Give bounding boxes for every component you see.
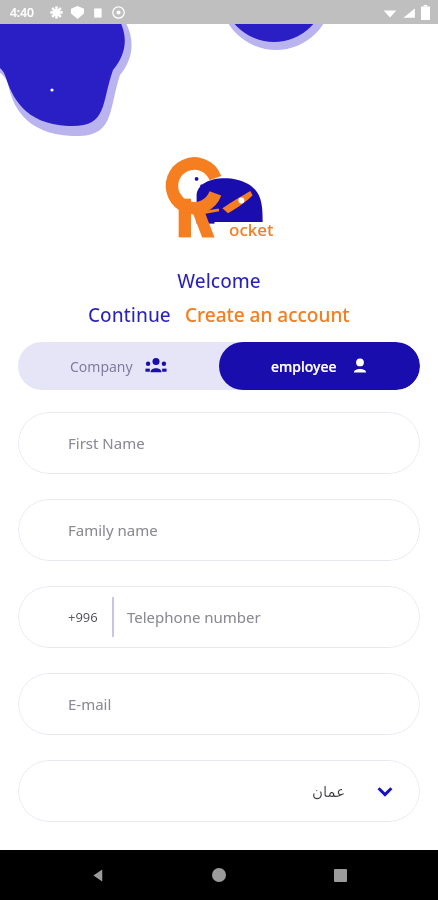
button[interactable]: E-mail <box>18 673 420 735</box>
button[interactable]: Back <box>75 852 121 898</box>
staticText: Create an account <box>185 302 350 328</box>
button[interactable]: Family name <box>18 499 420 561</box>
staticText: E-mail <box>68 694 112 714</box>
staticText: Telephone number <box>127 607 261 627</box>
staticText: First Name <box>68 433 145 453</box>
button[interactable]: Company <box>18 342 219 390</box>
button[interactable]: Select country <box>372 778 398 804</box>
button[interactable]: First Name <box>18 412 420 474</box>
button[interactable]: عمان <box>18 760 420 822</box>
button[interactable]: Create an account <box>183 300 352 330</box>
staticText: Family name <box>68 520 158 540</box>
button[interactable]: employee <box>219 342 420 390</box>
staticText: employee <box>271 357 337 376</box>
staticText: Welcome <box>0 268 438 294</box>
staticText: ocket <box>229 218 274 241</box>
staticText: Company <box>70 357 133 376</box>
staticText: +996 <box>68 608 98 626</box>
button[interactable]: Continue <box>86 300 173 330</box>
staticText: Continue <box>88 302 171 328</box>
button[interactable]: Recent apps <box>317 852 363 898</box>
staticText: 4:40 <box>10 4 34 20</box>
staticText: عمان <box>312 783 346 800</box>
button[interactable]: +996 <box>18 586 420 648</box>
button[interactable]: Home <box>196 852 242 898</box>
